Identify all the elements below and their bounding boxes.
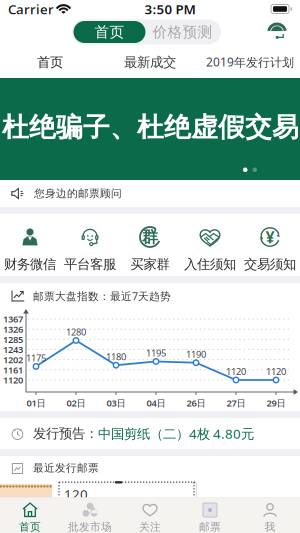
staticText: 您身边的邮票顾问 bbox=[34, 187, 122, 200]
staticText: 关注 bbox=[139, 520, 161, 533]
staticText: 1243 bbox=[3, 343, 23, 356]
staticText: 发行预告： bbox=[33, 425, 98, 442]
button[interactable]: 邮票 bbox=[196, 483, 300, 500]
staticText: 群 bbox=[142, 227, 158, 247]
staticText: 1190 bbox=[186, 348, 206, 360]
staticText: 1175 bbox=[26, 352, 46, 364]
staticText: 1120 bbox=[226, 365, 246, 378]
staticText: 1120 bbox=[3, 374, 23, 386]
staticText: 1161 bbox=[3, 364, 23, 376]
staticText: 1195 bbox=[146, 347, 166, 359]
staticText: 1367 bbox=[3, 313, 23, 325]
staticText: 1280 bbox=[66, 326, 86, 338]
staticText: 1202 bbox=[3, 353, 23, 366]
button[interactable]: 首页 bbox=[0, 46, 100, 78]
staticText: 杜绝骗子、杜绝虚假交易 bbox=[2, 111, 299, 144]
button[interactable]: 财务微信 bbox=[0, 214, 60, 276]
staticText: ¥ bbox=[265, 226, 274, 248]
staticText: 首页 bbox=[94, 23, 124, 41]
staticText: 平台客服 bbox=[64, 256, 116, 272]
staticText: 29日 bbox=[266, 397, 285, 409]
staticText: 入住须知 bbox=[184, 256, 236, 272]
button[interactable]: 您身边的邮票顾问 bbox=[0, 180, 300, 207]
staticText: 1120 bbox=[266, 365, 286, 378]
staticText: 1285 bbox=[3, 333, 23, 345]
button[interactable]: 邮票 120 bbox=[58, 483, 196, 497]
button[interactable]: 邮票 bbox=[0, 484, 52, 501]
staticText: 邮票 bbox=[199, 520, 221, 533]
staticText: 价格预测 bbox=[152, 23, 212, 41]
staticText: 交易须知 bbox=[244, 256, 296, 272]
staticText: 首页 bbox=[37, 54, 63, 70]
button[interactable]: 首页 bbox=[73, 21, 145, 43]
button[interactable]: 邮票 bbox=[180, 497, 240, 533]
button[interactable]: 我 bbox=[240, 497, 300, 533]
staticText: 3:50 PM bbox=[144, 0, 195, 18]
button[interactable]: 群 bbox=[120, 214, 180, 276]
staticText: 01日 bbox=[26, 397, 45, 409]
staticText: 02日 bbox=[66, 397, 85, 409]
staticText: 财务微信 bbox=[4, 256, 56, 272]
button[interactable]: 批发市场 bbox=[60, 497, 120, 533]
button[interactable]: 最新成交 bbox=[100, 46, 200, 78]
staticText: 首页 bbox=[19, 520, 41, 533]
button[interactable]: 入住须知 bbox=[180, 214, 240, 276]
button[interactable]: ¥ bbox=[240, 214, 300, 276]
staticText: 批发市场 bbox=[68, 520, 112, 533]
staticText: 03日 bbox=[106, 397, 125, 409]
staticText: 邮票大盘指数：最近7天趋势 bbox=[33, 289, 171, 303]
button[interactable]: 客服 bbox=[266, 21, 288, 43]
staticText: 26日 bbox=[186, 397, 205, 409]
button[interactable]: 平台客服 bbox=[60, 214, 120, 276]
staticText: 120 bbox=[64, 485, 88, 503]
staticText: 最新成交 bbox=[124, 54, 176, 70]
staticText: 27日 bbox=[226, 397, 245, 409]
button[interactable]: 发行预告： bbox=[0, 418, 300, 449]
button[interactable]: 2019年发行计划 bbox=[200, 46, 300, 78]
button[interactable]: 首页 bbox=[0, 497, 60, 533]
staticText: 1180 bbox=[106, 350, 126, 363]
staticText: 中国剪纸（二）4枚 4.80元 bbox=[98, 425, 254, 442]
button[interactable]: 关注 bbox=[120, 497, 180, 533]
staticText: 买家群 bbox=[130, 256, 169, 272]
staticText: Carrier bbox=[8, 0, 54, 18]
staticText: 最近发行邮票 bbox=[33, 461, 99, 474]
staticText: 04日 bbox=[146, 397, 165, 409]
staticText: 2019年发行计划 bbox=[206, 54, 294, 70]
staticText: 我 bbox=[264, 520, 275, 533]
staticText: 1326 bbox=[3, 323, 23, 335]
button[interactable]: 价格预测 bbox=[145, 21, 219, 43]
